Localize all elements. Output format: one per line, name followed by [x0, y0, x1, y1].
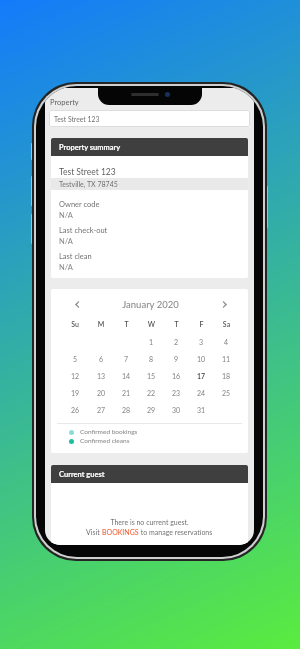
staticText: Property summary	[59, 143, 121, 152]
button[interactable]: Next month	[217, 297, 231, 311]
staticText: 7	[124, 355, 129, 363]
staticText: 14	[122, 372, 131, 380]
staticText: 4	[224, 338, 229, 346]
staticText: 24	[197, 389, 206, 397]
staticText: 8	[149, 355, 154, 363]
staticText: 20	[97, 389, 106, 397]
staticText: T	[114, 320, 139, 328]
staticText: 26	[71, 406, 80, 414]
staticText: Visit	[86, 528, 102, 536]
staticText: Property	[50, 98, 79, 107]
staticText: 13	[97, 372, 106, 380]
staticText: 12	[71, 372, 80, 380]
staticText: 22	[147, 389, 156, 397]
staticText: Testville, TX 78745	[59, 180, 118, 188]
staticText: 27	[97, 406, 106, 414]
staticText: 16	[172, 372, 181, 380]
staticText: N/A	[59, 211, 73, 220]
staticText: 10	[197, 355, 206, 363]
staticText: Test Street 123	[59, 167, 116, 177]
staticText: 17	[197, 372, 206, 380]
staticText: 9	[174, 355, 179, 363]
staticText: Confirmed cleans	[80, 437, 130, 445]
staticText: Current guest	[59, 470, 105, 479]
staticText: 31	[197, 406, 206, 414]
staticText: Confirmed bookings	[80, 428, 138, 436]
staticText: Su	[62, 320, 88, 328]
staticText: N/A	[59, 237, 73, 246]
staticText: 30	[172, 406, 181, 414]
staticText: 1	[149, 338, 154, 346]
staticText: F	[189, 320, 214, 328]
staticText: 2	[174, 338, 179, 346]
staticText: 19	[71, 389, 80, 397]
staticText: 28	[122, 406, 131, 414]
staticText: Sa	[214, 320, 239, 328]
staticText: to manage reservations	[139, 528, 213, 536]
staticText: 6	[99, 355, 104, 363]
staticText: 21	[122, 389, 131, 397]
staticText: 5	[73, 355, 78, 363]
staticText: Owner code	[59, 200, 100, 209]
staticText: January 2020	[84, 299, 217, 310]
staticText: Last clean	[59, 252, 92, 261]
staticText: T	[164, 320, 189, 328]
staticText: 15	[147, 372, 156, 380]
staticText: 29	[147, 406, 156, 414]
staticText: W	[139, 320, 164, 328]
staticText: N/A	[59, 263, 73, 272]
staticText: 23	[172, 389, 181, 397]
staticText: M	[88, 320, 114, 328]
button[interactable]: Previous month	[70, 297, 84, 311]
staticText: There is no current guest.	[51, 518, 248, 526]
staticText: Last check-out	[59, 226, 108, 235]
button[interactable]: Test Street 123	[49, 110, 250, 127]
staticText: 25	[222, 389, 231, 397]
staticText: 11	[222, 355, 231, 363]
staticText: 3	[199, 338, 204, 346]
staticText: Test Street 123	[54, 115, 100, 123]
button[interactable]: BOOKINGS	[102, 528, 139, 536]
staticText: 18	[222, 372, 231, 380]
